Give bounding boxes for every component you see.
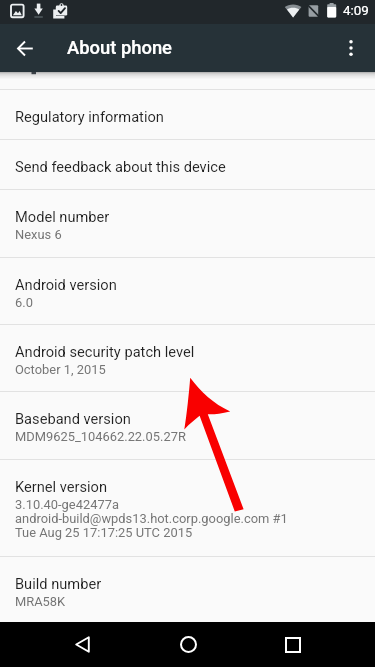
staticText: 6.0: [15, 295, 33, 310]
staticText: Android version: [15, 276, 117, 293]
button[interactable]: Home: [164, 622, 212, 667]
button[interactable]: Build number: [0, 557, 375, 624]
button[interactable]: Recent apps: [269, 622, 317, 667]
staticText: October 1, 2015: [15, 362, 106, 377]
staticText: android-build@wpds13.hot.corp.google.com…: [15, 511, 288, 526]
staticText: 4:09: [343, 3, 369, 19]
button[interactable]: Kernel version: [0, 460, 375, 556]
button[interactable]: More options: [327, 24, 375, 72]
button[interactable]: [0, 72, 375, 89]
staticText: Android security patch level: [15, 343, 195, 360]
button[interactable]: Navigate up: [1, 24, 49, 72]
staticText: Kernel version: [15, 478, 108, 495]
button[interactable]: Baseband version: [0, 392, 375, 459]
button[interactable]: Model number: [0, 190, 375, 257]
button[interactable]: Back: [58, 622, 106, 667]
staticText: 3.10.40-ge42477a: [15, 497, 119, 512]
button[interactable]: Regulatory information: [0, 90, 375, 139]
staticText: Build number: [15, 575, 102, 592]
staticText: Nexus 6: [15, 227, 62, 242]
staticText: Model number: [15, 208, 110, 225]
staticText: MDM9625_104662.22.05.27R: [15, 429, 186, 444]
staticText: MRA58K: [15, 594, 66, 609]
button[interactable]: Send feedback about this device: [0, 140, 375, 189]
staticText: Regulatory information: [15, 108, 164, 125]
button[interactable]: Android version: [0, 258, 375, 324]
button[interactable]: Android security patch level: [0, 325, 375, 391]
staticText: Send feedback about this device: [15, 158, 226, 175]
staticText: Tue Aug 25 17:17:25 UTC 2015: [15, 525, 193, 540]
staticText: Baseband version: [15, 410, 131, 427]
staticText: About phone: [67, 37, 172, 59]
